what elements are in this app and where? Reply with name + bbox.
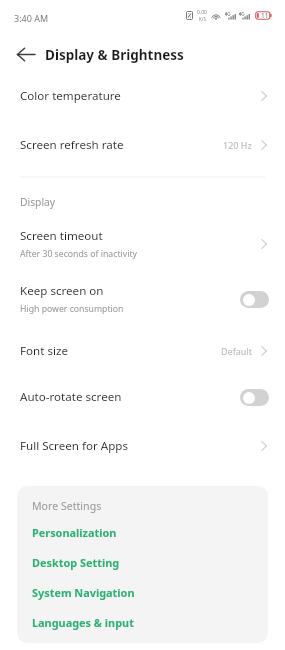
staticText: After 30 seconds of inactivity [20, 248, 137, 260]
button[interactable]: Languages & input [17, 607, 268, 637]
staticText: Display [20, 195, 56, 209]
staticText: 120 Hz [223, 139, 252, 151]
button[interactable]: Color temperature [0, 72, 285, 120]
staticText: K/S [199, 16, 206, 22]
button[interactable]: Toggle Auto-rotate screen [240, 389, 269, 406]
staticText: Personalization [32, 525, 117, 540]
button[interactable]: Personalization [17, 517, 268, 547]
staticText: 0.00 [197, 9, 207, 16]
staticText: Color temperature [20, 88, 121, 104]
button[interactable]: Toggle Keep screen on [240, 291, 269, 308]
staticText: 3:40 AM [14, 12, 49, 24]
staticText: 11 [261, 11, 269, 20]
staticText: System Navigation [32, 585, 135, 600]
staticText: Screen timeout [20, 228, 103, 244]
button[interactable]: System Navigation [17, 577, 268, 607]
staticText: Desktop Setting [32, 555, 120, 570]
staticText: High power consumption [20, 303, 124, 315]
staticText: Screen refresh rate [20, 137, 124, 153]
staticText: Display & Brightness [45, 46, 184, 64]
staticText: Font size [20, 343, 68, 359]
staticText: Default [221, 345, 252, 357]
button[interactable]: Keep screen on [0, 273, 285, 325]
staticText: More Settings [32, 499, 102, 513]
button[interactable]: Font size [0, 327, 285, 375]
button[interactable]: Screen refresh rate [0, 121, 285, 169]
staticText: Auto-rotate screen [20, 389, 122, 405]
button[interactable]: Desktop Setting [17, 547, 268, 577]
button[interactable]: Screen timeout [0, 218, 285, 270]
staticText: Keep screen on [20, 283, 104, 299]
staticText: Full Screen for Apps [20, 438, 128, 454]
button[interactable]: Full Screen for Apps [0, 422, 285, 470]
staticText: Languages & input [32, 615, 134, 630]
button[interactable]: Back [9, 37, 43, 71]
button[interactable]: Auto-rotate screen [0, 373, 285, 421]
